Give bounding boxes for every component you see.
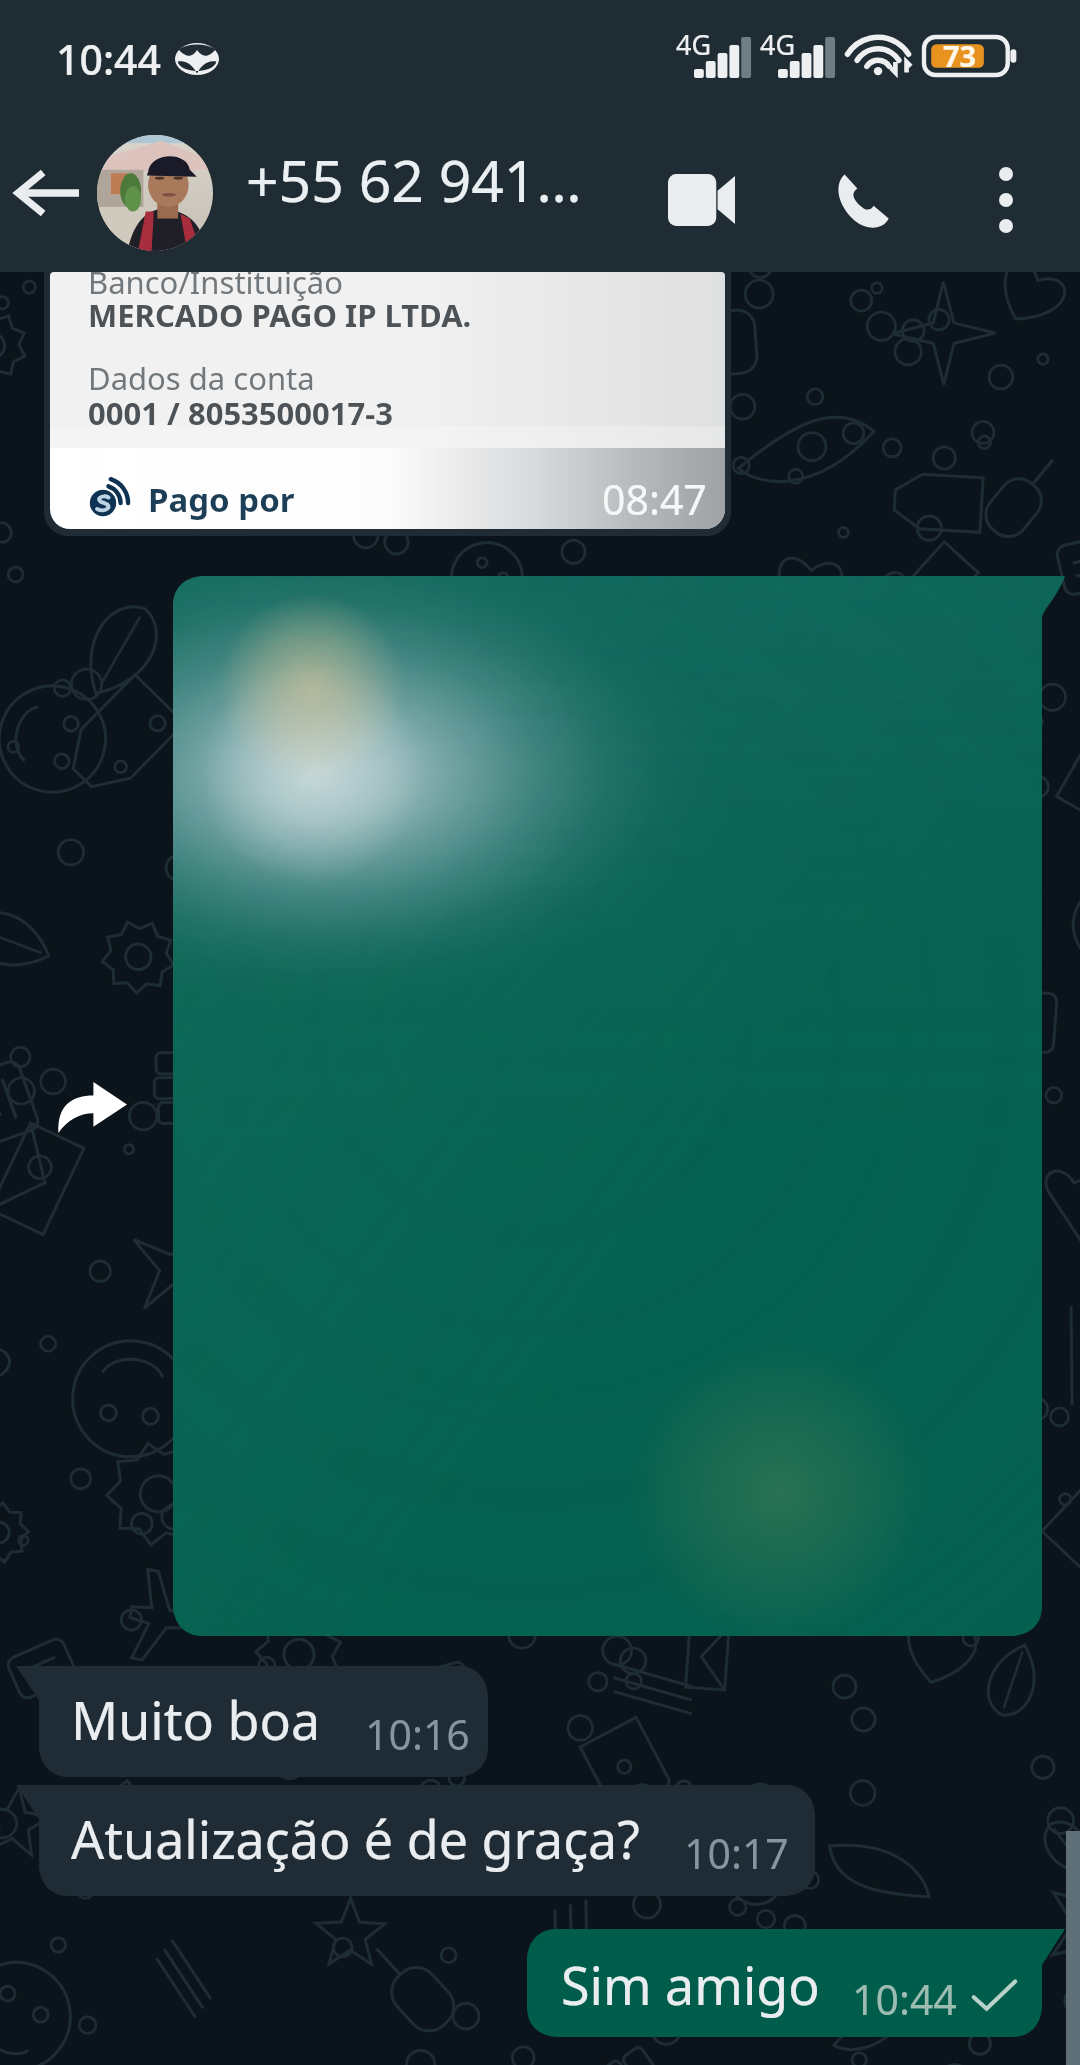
staticText: 73 <box>943 36 977 75</box>
button[interactable]: Back <box>6 152 88 234</box>
button[interactable]: Muito boa <box>16 1666 488 1777</box>
staticText: 10:17 <box>684 1825 789 1881</box>
staticText: Dados da conta <box>88 357 315 399</box>
staticText: 4G <box>760 26 796 63</box>
staticText: Sim amigo <box>561 1949 820 2020</box>
staticText: 10:44 <box>56 31 161 87</box>
staticText: 10:44 <box>852 1971 957 2027</box>
staticText: +55 62 941… <box>246 141 582 219</box>
button[interactable]: Contact photo <box>97 135 213 251</box>
button[interactable]: Forward <box>46 1061 138 1153</box>
button[interactable]: Voice call <box>814 150 914 250</box>
staticText: 4G <box>676 26 712 63</box>
staticText: Banco/Instituição <box>88 272 343 303</box>
button[interactable]: Video call <box>651 150 751 250</box>
button[interactable]: Sim amigo <box>527 1929 1065 2037</box>
staticText: MERCADO PAGO IP LTDA. <box>88 294 472 336</box>
button[interactable]: Atualização é de graça? <box>16 1785 815 1896</box>
button[interactable] <box>173 576 1065 1636</box>
button[interactable]: Banco/Instituição <box>50 272 725 529</box>
staticText: Atualização é de graça? <box>71 1803 640 1874</box>
staticText: Muito boa <box>71 1684 321 1755</box>
button[interactable]: More options <box>956 150 1056 250</box>
staticText: Pago por <box>148 477 295 522</box>
staticText: 0001 / 8053500017-3 <box>88 392 393 434</box>
staticText: 08:47 <box>602 471 707 527</box>
staticText: 10:16 <box>365 1706 470 1762</box>
